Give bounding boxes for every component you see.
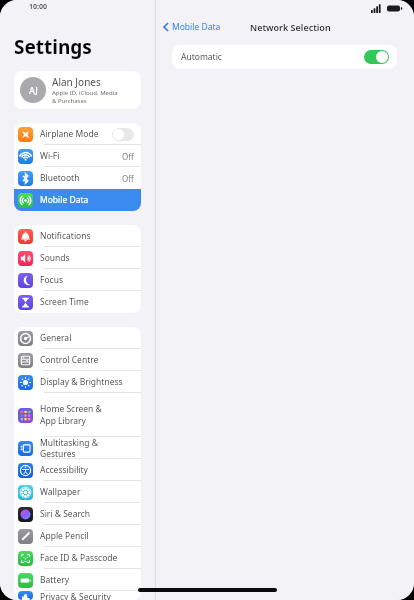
staticText: AJ bbox=[29, 84, 38, 96]
staticText: Automatic bbox=[181, 51, 222, 63]
button[interactable]: Automatic bbox=[172, 45, 397, 69]
button[interactable]: Wallpaper bbox=[14, 481, 141, 503]
button[interactable]: Face ID & Passcode bbox=[14, 547, 141, 569]
staticText: Mobile Data bbox=[40, 194, 89, 206]
staticText: Network Selection bbox=[250, 21, 331, 33]
staticText: Notifications bbox=[40, 230, 91, 242]
button[interactable]: Focus bbox=[14, 269, 141, 291]
staticText: Sounds bbox=[40, 252, 70, 264]
button[interactable]: Bluetooth bbox=[14, 167, 141, 189]
staticText: Settings bbox=[14, 34, 92, 60]
staticText: Airplane Mode bbox=[40, 128, 99, 140]
staticText: Wallpaper bbox=[40, 486, 81, 498]
button[interactable]: Display & Brightness bbox=[14, 371, 141, 393]
button[interactable]: Mobile Data bbox=[14, 189, 141, 211]
button[interactable]: Automatic toggle bbox=[364, 50, 389, 64]
staticText: App Library bbox=[40, 415, 86, 427]
staticText: Siri & Search bbox=[40, 508, 91, 520]
staticText: Apple Pencil bbox=[40, 530, 89, 542]
button[interactable]: Sounds bbox=[14, 247, 141, 269]
button[interactable]: Control Centre bbox=[14, 349, 141, 371]
staticText: Focus bbox=[40, 274, 63, 286]
staticText: Accessibility bbox=[40, 464, 88, 476]
staticText: Alan Jones bbox=[52, 75, 101, 89]
staticText: Face ID & Passcode bbox=[40, 552, 118, 564]
button[interactable]: Battery bbox=[14, 569, 141, 591]
button[interactable]: Accessibility bbox=[14, 459, 141, 481]
button[interactable]: Apple Pencil bbox=[14, 525, 141, 547]
staticText: Home Screen & bbox=[40, 403, 102, 415]
button[interactable]: Notifications bbox=[14, 225, 141, 247]
staticText: Control Centre bbox=[40, 354, 99, 366]
staticText: Mobile Data bbox=[172, 21, 221, 33]
staticText: 10:00 bbox=[29, 2, 47, 12]
button[interactable]: Wi-Fi bbox=[14, 145, 141, 167]
button[interactable]: General bbox=[14, 327, 141, 349]
staticText: & Purchases bbox=[52, 97, 87, 105]
staticText: Display & Brightness bbox=[40, 376, 123, 388]
button[interactable]: Multitasking & Gestures bbox=[14, 437, 141, 459]
staticText: Privacy & Security bbox=[40, 591, 111, 600]
staticText: Battery bbox=[40, 574, 70, 586]
button[interactable]: Home Screen & bbox=[14, 393, 141, 437]
staticText: Wi-Fi bbox=[40, 150, 60, 162]
button[interactable]: Siri & Search bbox=[14, 503, 141, 525]
staticText: Multitasking & Gestures bbox=[40, 437, 134, 459]
button[interactable]: Airplane Mode bbox=[14, 123, 141, 145]
staticText: Apple ID, iCloud, Media bbox=[52, 89, 118, 97]
staticText: Off bbox=[122, 151, 134, 162]
button[interactable]: Screen Time bbox=[14, 291, 141, 313]
button[interactable]: Airplane Mode toggle bbox=[112, 128, 134, 141]
staticText: Bluetooth bbox=[40, 172, 80, 184]
button[interactable]: AJ bbox=[14, 71, 141, 109]
staticText: Screen Time bbox=[40, 296, 89, 308]
staticText: Off bbox=[122, 173, 134, 184]
staticText: General bbox=[40, 332, 72, 344]
button[interactable]: Mobile Data bbox=[163, 21, 221, 33]
button[interactable]: Privacy & Security bbox=[14, 591, 141, 600]
